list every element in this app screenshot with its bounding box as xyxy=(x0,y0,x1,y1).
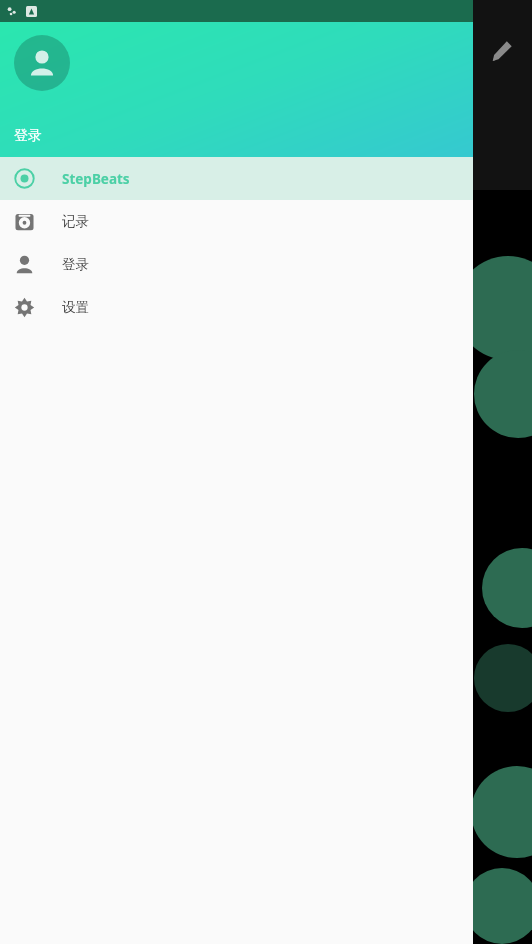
button[interactable]: Edit xyxy=(487,36,517,66)
button[interactable]: Profile photo xyxy=(14,35,70,91)
button[interactable]: 记录 xyxy=(0,200,473,243)
button[interactable]: 登录 xyxy=(14,127,42,145)
staticText: 记录 xyxy=(62,213,89,230)
button[interactable]: 设置 xyxy=(0,286,473,329)
button[interactable]: 登录 xyxy=(0,243,473,286)
staticText: 登录 xyxy=(14,127,42,145)
staticText: StepBeats xyxy=(62,170,130,188)
staticText: 登录 xyxy=(62,256,89,273)
button[interactable]: StepBeats xyxy=(0,157,473,200)
staticText: 设置 xyxy=(62,299,89,316)
